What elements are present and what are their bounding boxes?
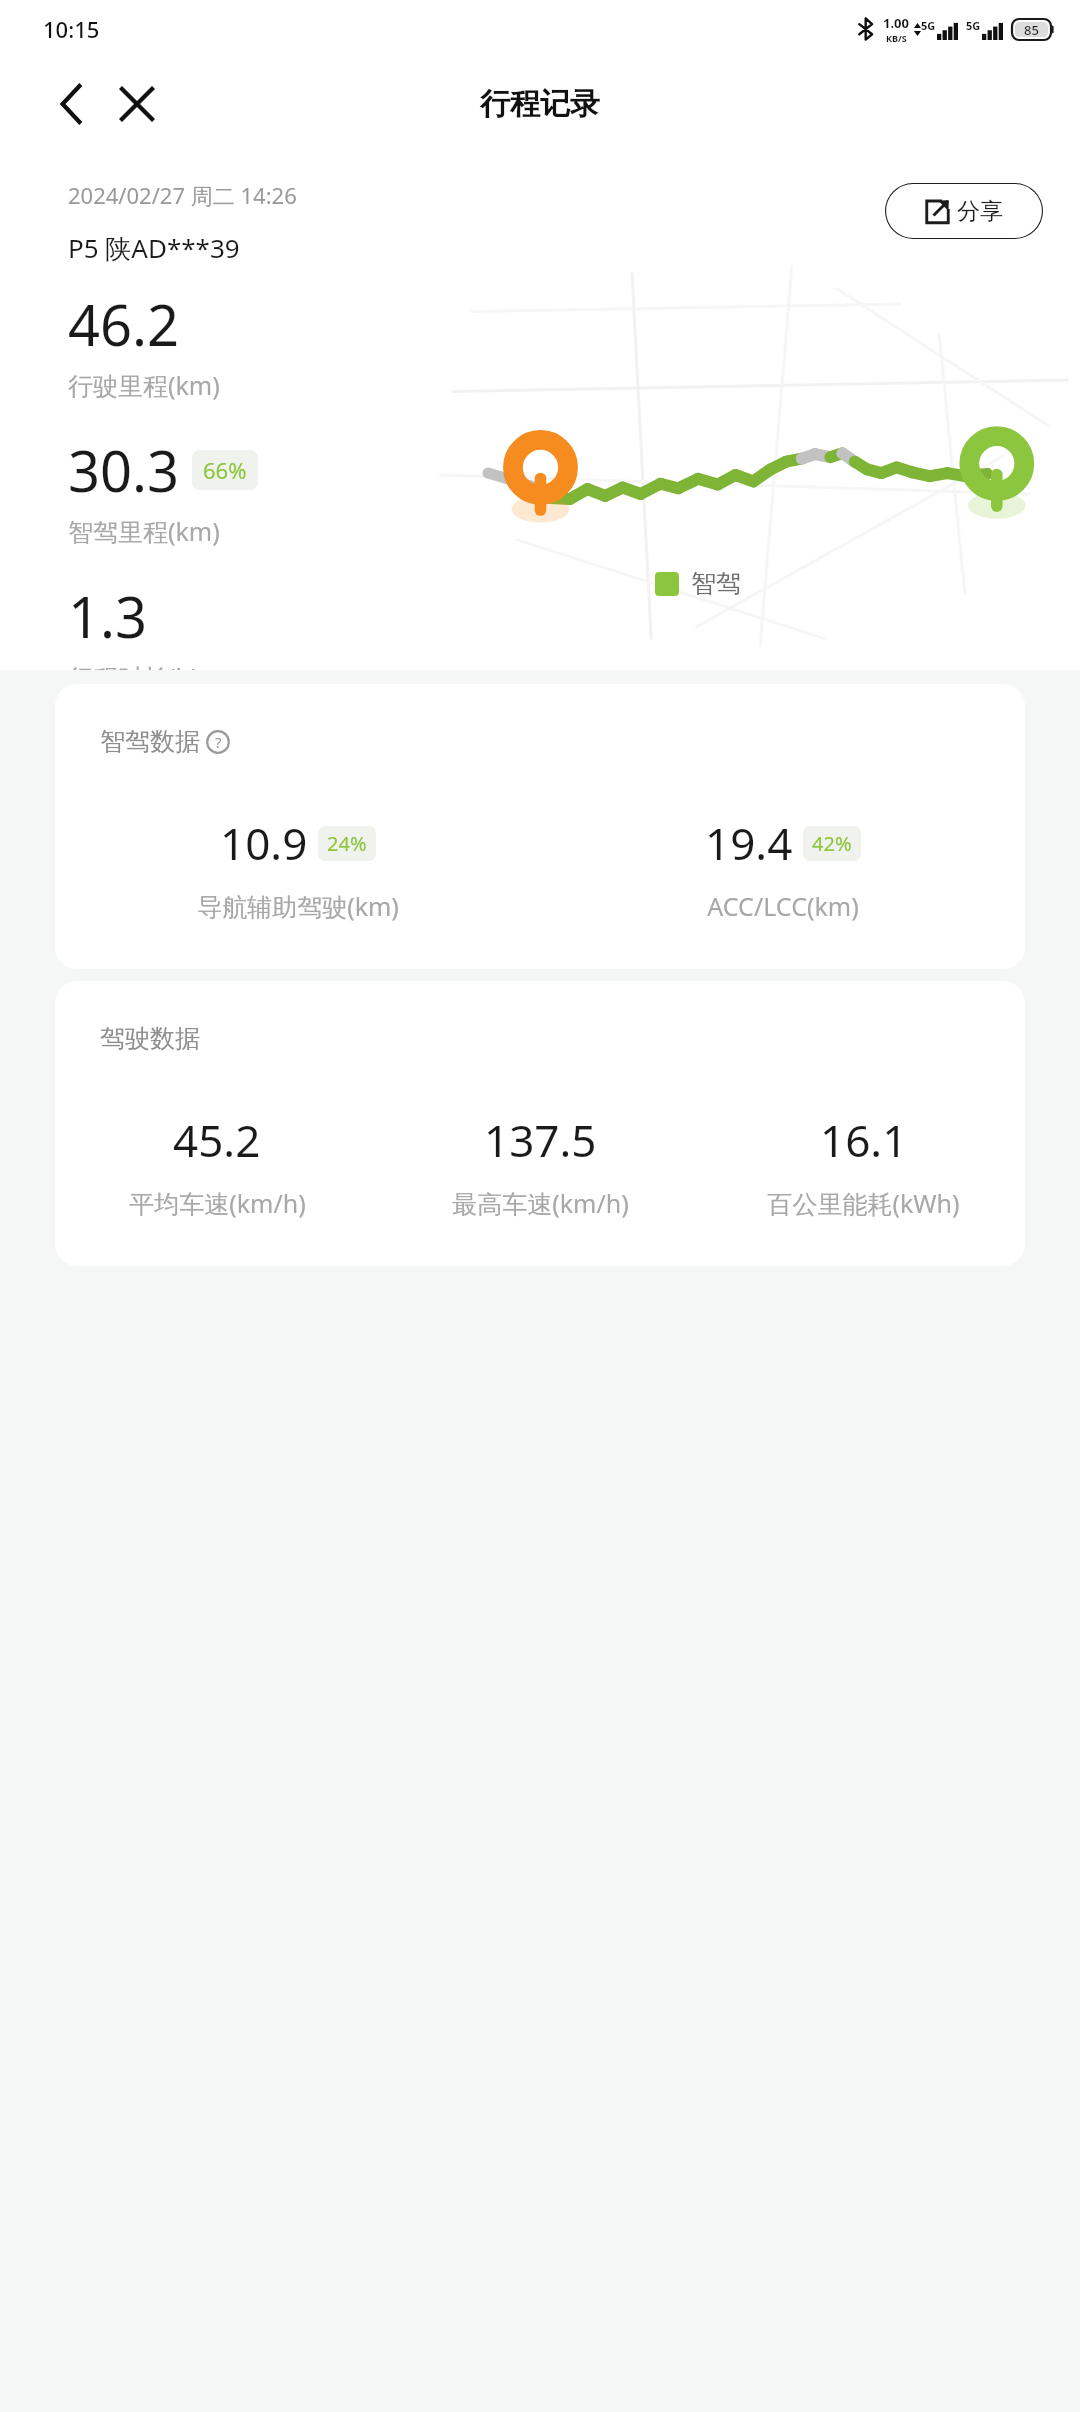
staticText: 最高车速(km/h) bbox=[452, 1186, 629, 1220]
staticText: 行驶里程(km) bbox=[68, 368, 220, 402]
staticText: 行程时长(h) bbox=[68, 660, 199, 670]
staticText: 42% bbox=[812, 830, 852, 857]
staticText: 19.4 bbox=[705, 813, 793, 873]
staticText: 导航辅助驾驶(km) bbox=[197, 889, 399, 923]
staticText: ACC/LCC(km) bbox=[707, 889, 859, 923]
staticText: 46.2 bbox=[68, 286, 180, 362]
staticText: 10:15 bbox=[43, 14, 100, 44]
staticText: 85 bbox=[1024, 21, 1039, 39]
staticText: 137.5 bbox=[484, 1110, 597, 1170]
staticText: 45.2 bbox=[173, 1110, 261, 1170]
staticText: 30.3 bbox=[68, 432, 180, 508]
staticText: 智驾 bbox=[691, 568, 741, 599]
staticText: 分享 bbox=[957, 197, 1003, 226]
staticText: 24% bbox=[327, 830, 367, 857]
button[interactable]: 智驾数据 bbox=[55, 684, 1025, 969]
staticText: 2024/02/27 周二 14:26 bbox=[68, 180, 297, 210]
staticText: KB/S bbox=[886, 32, 907, 44]
staticText: 行程记录 bbox=[480, 85, 600, 123]
staticText: ? bbox=[215, 732, 222, 752]
staticText: 百公里能耗(kWh) bbox=[767, 1186, 960, 1220]
staticText: 5G bbox=[921, 18, 936, 33]
button[interactable]: Close bbox=[108, 75, 166, 133]
staticText: 10.9 bbox=[220, 813, 308, 873]
button[interactable]: 驾驶数据 bbox=[55, 981, 1025, 1266]
staticText: 平均车速(km/h) bbox=[129, 1186, 306, 1220]
staticText: 5G bbox=[966, 18, 981, 33]
staticText: P5 陕AD***39 bbox=[68, 230, 240, 266]
staticText: 驾驶数据 bbox=[100, 1023, 200, 1054]
staticText: 1.00 bbox=[883, 14, 909, 32]
button[interactable]: Back bbox=[42, 75, 100, 133]
staticText: 16.1 bbox=[820, 1110, 908, 1170]
staticText: 66% bbox=[203, 455, 247, 485]
button[interactable]: 分享 bbox=[884, 182, 1044, 240]
staticText: 智驾里程(km) bbox=[68, 514, 220, 548]
staticText: 智驾数据 bbox=[100, 726, 200, 757]
staticText: 1.3 bbox=[68, 578, 148, 654]
